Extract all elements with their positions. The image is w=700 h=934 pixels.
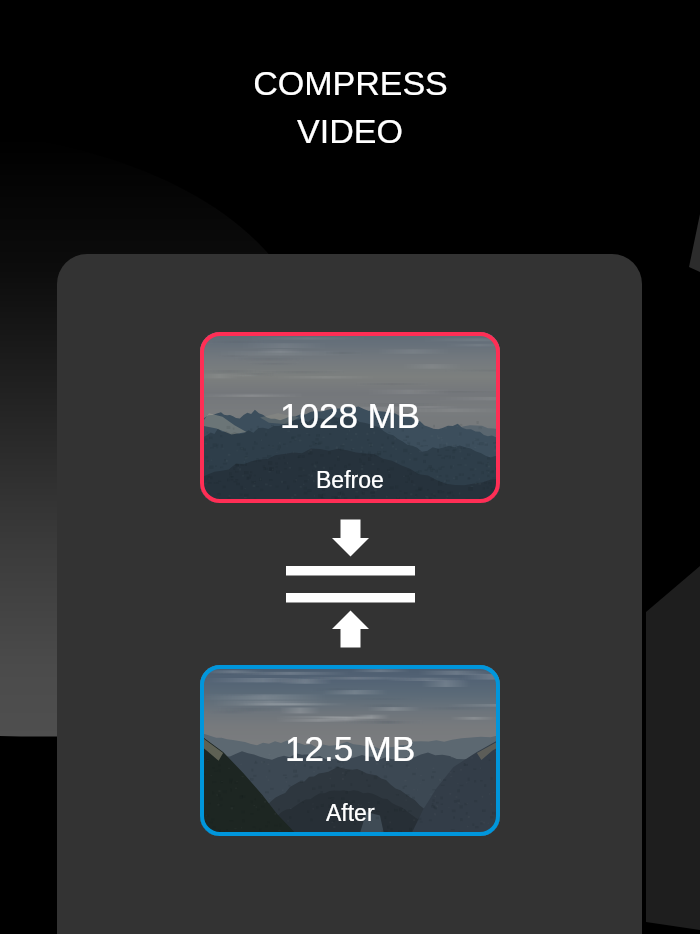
staticText: Befroe <box>316 467 384 493</box>
button[interactable]: 1028 MB <box>200 332 500 503</box>
staticText: After <box>326 800 375 826</box>
staticText: COMPRESS <box>253 64 448 102</box>
staticText: 12.5 MB <box>285 729 416 768</box>
button[interactable]: 12.5 MB <box>200 665 500 836</box>
staticText: VIDEO <box>297 112 403 150</box>
staticText: 1028 MB <box>280 396 421 435</box>
